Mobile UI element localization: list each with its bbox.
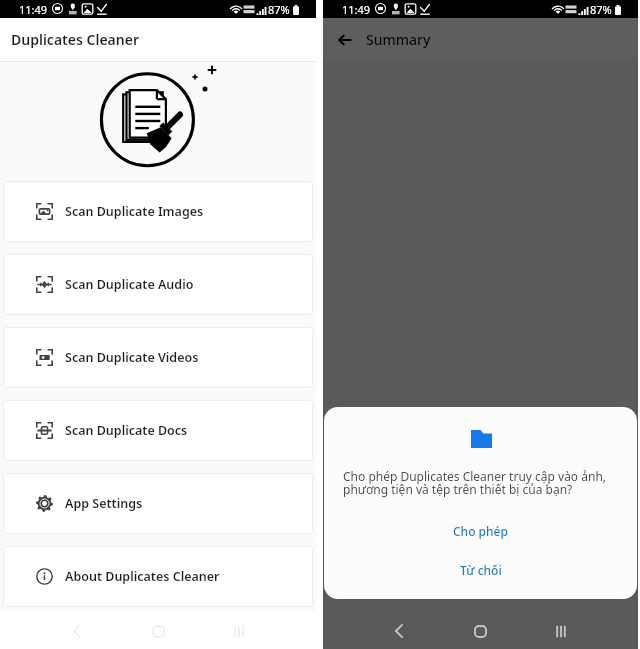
staticText: App Settings	[65, 495, 143, 512]
staticText: Scan Duplicate Videos	[65, 349, 199, 366]
staticText: 11:49	[19, 2, 48, 17]
staticText: Từ chối	[460, 562, 502, 578]
button[interactable]: About Duplicates Cleaner	[3, 546, 313, 607]
button[interactable]: Back	[335, 30, 355, 50]
staticText: Cho phép	[453, 523, 508, 539]
button[interactable]: Home	[141, 614, 175, 648]
staticText: About Duplicates Cleaner	[65, 568, 220, 585]
button[interactable]: Scan Duplicate Audio	[3, 254, 313, 315]
button[interactable]: Recents	[222, 614, 256, 648]
button[interactable]: Scan Duplicate Images	[3, 181, 313, 242]
button[interactable]: Back	[382, 614, 416, 648]
staticText: Summary	[366, 30, 431, 49]
staticText: Scan Duplicate Docs	[65, 422, 188, 439]
staticText: 11:49	[342, 2, 371, 17]
button[interactable]: Từ chối	[324, 558, 637, 582]
button[interactable]: Scan Duplicate Docs	[3, 400, 313, 461]
button[interactable]: Scan Duplicate Videos	[3, 327, 313, 388]
staticText: Duplicates Cleaner	[11, 30, 139, 49]
button[interactable]: Home	[463, 614, 497, 648]
staticText: Cho phép Duplicates Cleaner truy cập vào…	[343, 468, 607, 498]
button[interactable]: Cho phép	[324, 519, 637, 543]
button[interactable]: Recents	[544, 614, 578, 648]
staticText: 87%	[590, 2, 612, 17]
staticText: 87%	[268, 2, 290, 17]
staticText: Scan Duplicate Audio	[65, 276, 194, 293]
staticText: Scan Duplicate Images	[65, 203, 204, 220]
button[interactable]: App Settings	[3, 473, 313, 534]
